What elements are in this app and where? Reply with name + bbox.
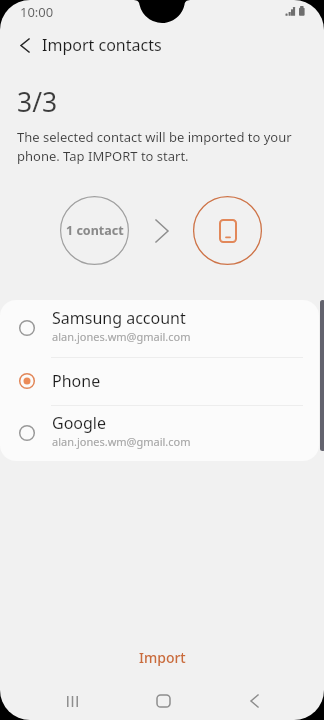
button[interactable]: Phone	[0, 358, 319, 405]
staticText: Phone	[52, 370, 101, 392]
button[interactable]: Back	[230, 684, 278, 718]
staticText: alan.jones.wm@gmail.com	[52, 434, 191, 449]
staticText: alan.jones.wm@gmail.com	[52, 329, 191, 344]
staticText: 1 contact	[66, 222, 124, 239]
staticText: Samsung account	[52, 307, 186, 329]
button[interactable]: Home	[139, 684, 187, 718]
staticText: 3/3	[17, 84, 58, 120]
staticText: The selected contact will be imported to…	[17, 128, 307, 165]
staticText: 10:00	[20, 3, 54, 21]
button[interactable]: Google	[0, 406, 319, 461]
button[interactable]: Samsung account	[0, 300, 319, 357]
staticText: Import contacts	[42, 34, 162, 56]
button[interactable]: Import	[0, 641, 324, 673]
button[interactable]: Recent apps	[48, 684, 96, 718]
staticText: Google	[52, 412, 107, 434]
button[interactable]: Navigate up	[11, 32, 38, 59]
staticText: Import	[139, 648, 186, 667]
